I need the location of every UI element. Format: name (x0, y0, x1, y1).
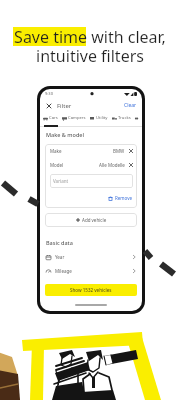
staticText: Clear (124, 102, 137, 109)
button[interactable]: Clear (124, 102, 137, 109)
staticText: Mileage (55, 268, 72, 274)
staticText: Show 1532 vehicles (70, 287, 112, 293)
staticText: Utility (96, 115, 108, 121)
button[interactable]: Remove Model (129, 163, 133, 167)
button[interactable]: Show 1532 vehicles (45, 284, 137, 296)
button[interactable]: Mo (135, 112, 138, 123)
staticText: Variant (53, 178, 69, 184)
button[interactable]: Close filters (46, 103, 52, 109)
staticText: Basic data (46, 239, 73, 246)
staticText: Cars (49, 115, 58, 121)
button[interactable]: Cars (43, 115, 58, 121)
staticText: Model (50, 162, 64, 168)
staticText: Campers (68, 115, 86, 121)
staticText: Trucks (118, 115, 131, 121)
button[interactable]: Add vehicle (45, 213, 137, 227)
button[interactable]: Trucks (112, 115, 131, 121)
staticText: Save time with clear, intuitive filters (0, 26, 180, 67)
button[interactable]: Variant (53, 174, 133, 188)
staticText: Alle Modelle (99, 162, 125, 168)
button[interactable]: Year (46, 250, 136, 264)
staticText: Add vehicle (82, 217, 107, 223)
staticText: Make & model (46, 131, 84, 138)
button[interactable]: Remove Make (129, 149, 133, 153)
button[interactable]: Remove (50, 188, 133, 208)
staticText: Make (50, 148, 62, 154)
staticText: Filter (57, 102, 72, 110)
button[interactable]: Model (50, 158, 133, 172)
button[interactable]: Campers (62, 115, 86, 121)
button[interactable]: Make (50, 144, 133, 158)
button[interactable]: Utility (90, 115, 108, 121)
staticText: 9:30 (45, 91, 53, 96)
staticText: Remove (115, 195, 133, 201)
button[interactable]: Mileage (46, 264, 136, 278)
staticText: Year (55, 254, 65, 260)
staticText: BMW (113, 148, 125, 154)
